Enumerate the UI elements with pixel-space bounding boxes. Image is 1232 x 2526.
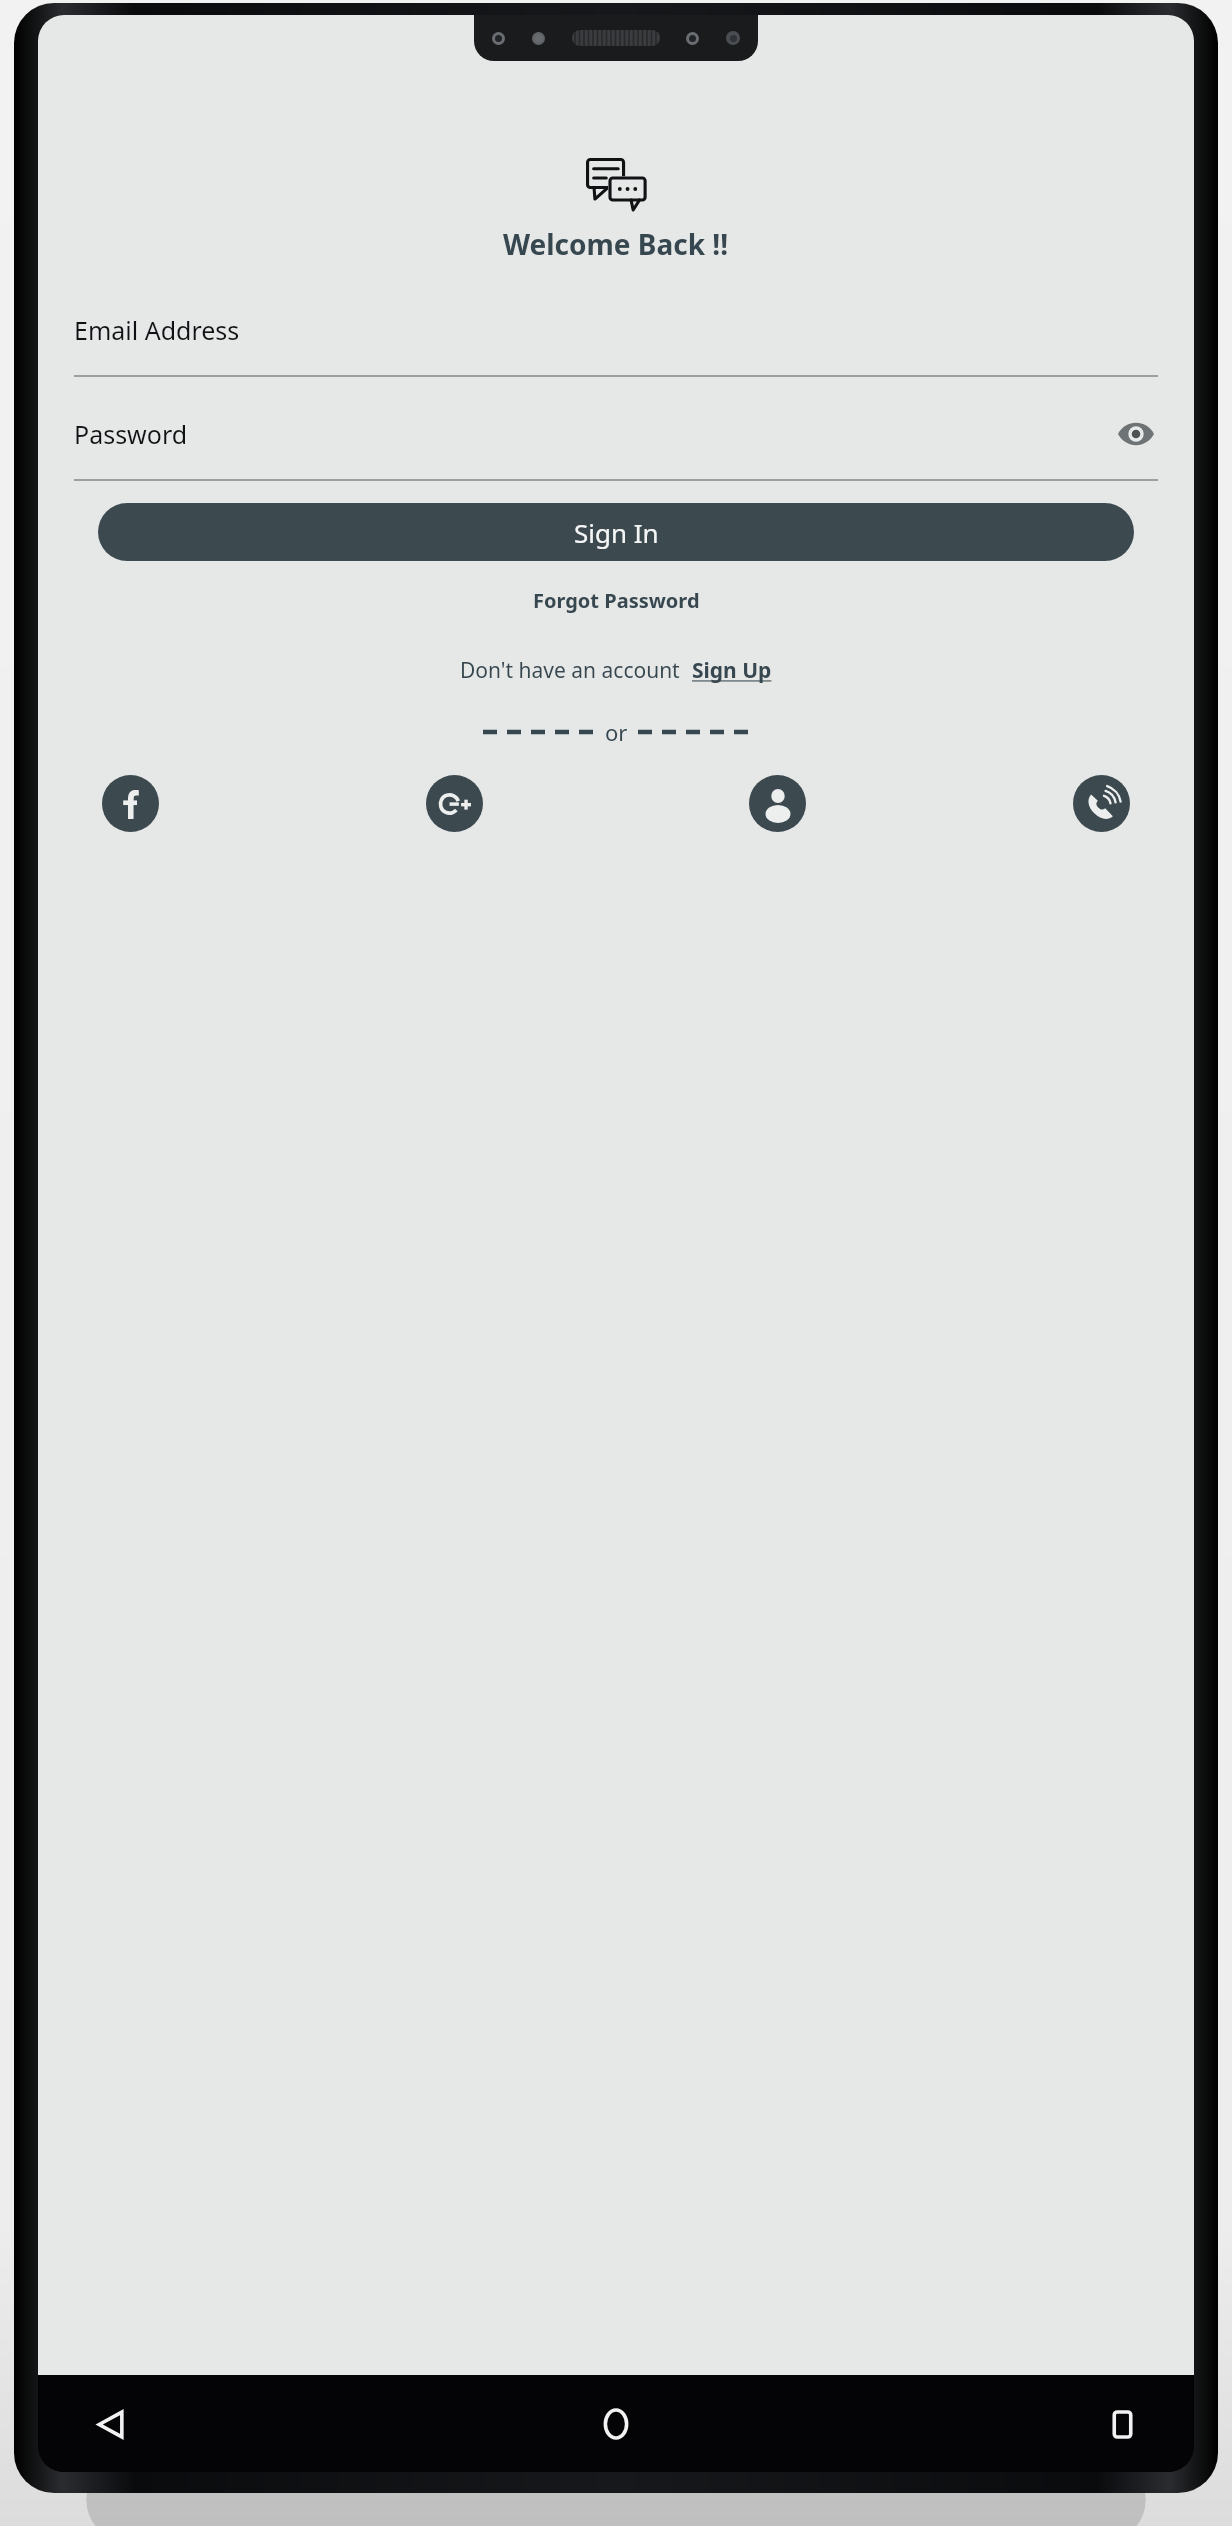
staticText: Forgot Password <box>533 587 700 614</box>
button[interactable]: Sign in with Facebook <box>102 775 159 832</box>
button[interactable]: Recent apps <box>1094 2396 1150 2452</box>
staticText: Email Address <box>74 313 1158 347</box>
button[interactable]: Forgot Password <box>527 581 706 620</box>
button[interactable]: Sign in with phone <box>1073 775 1130 832</box>
staticText: Welcome Back !! <box>503 225 729 263</box>
button[interactable]: Sign in as guest <box>749 775 806 832</box>
staticText: Don't have an account <box>460 656 680 685</box>
staticText: Sign Up <box>692 656 772 685</box>
button[interactable]: Show password <box>1114 412 1158 456</box>
button[interactable]: Sign In <box>98 503 1134 561</box>
staticText: or <box>605 717 628 747</box>
staticText: Password <box>74 417 1114 451</box>
button[interactable]: Email Address <box>74 301 1158 377</box>
button[interactable]: Password <box>74 405 1158 481</box>
other: Chat <box>586 158 646 208</box>
button[interactable]: Sign in with Google <box>426 775 483 832</box>
button[interactable]: Back <box>82 2396 138 2452</box>
button[interactable]: Home <box>588 2396 644 2452</box>
button[interactable]: Don't have an account <box>460 656 772 685</box>
staticText: Sign In <box>574 515 659 550</box>
